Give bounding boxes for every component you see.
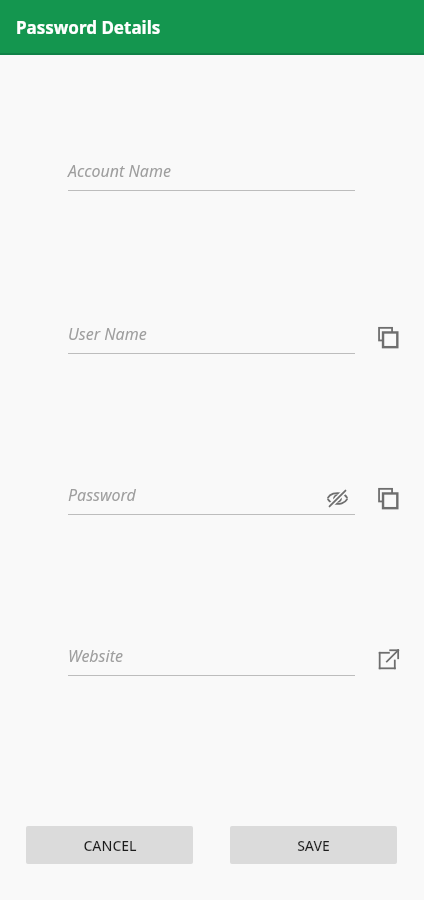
button[interactable]: Copy [371,320,405,354]
staticText: SAVE [297,836,330,855]
button[interactable]: Account Name [68,157,355,191]
button[interactable]: CANCEL [26,826,193,864]
button[interactable]: Show password [322,483,352,513]
button[interactable]: SAVE [230,826,397,864]
staticText: Account Name [68,160,171,182]
staticText: CANCEL [83,836,137,855]
staticText: User Name [68,323,147,345]
staticText: Website [68,645,123,667]
staticText: Password Details [16,16,161,39]
button[interactable]: User Name [68,320,355,354]
button[interactable]: Password [68,481,355,515]
staticText: Password [68,484,136,506]
button[interactable]: Website [68,642,355,676]
button[interactable]: Open website [371,642,405,676]
button[interactable]: Copy [371,481,405,515]
